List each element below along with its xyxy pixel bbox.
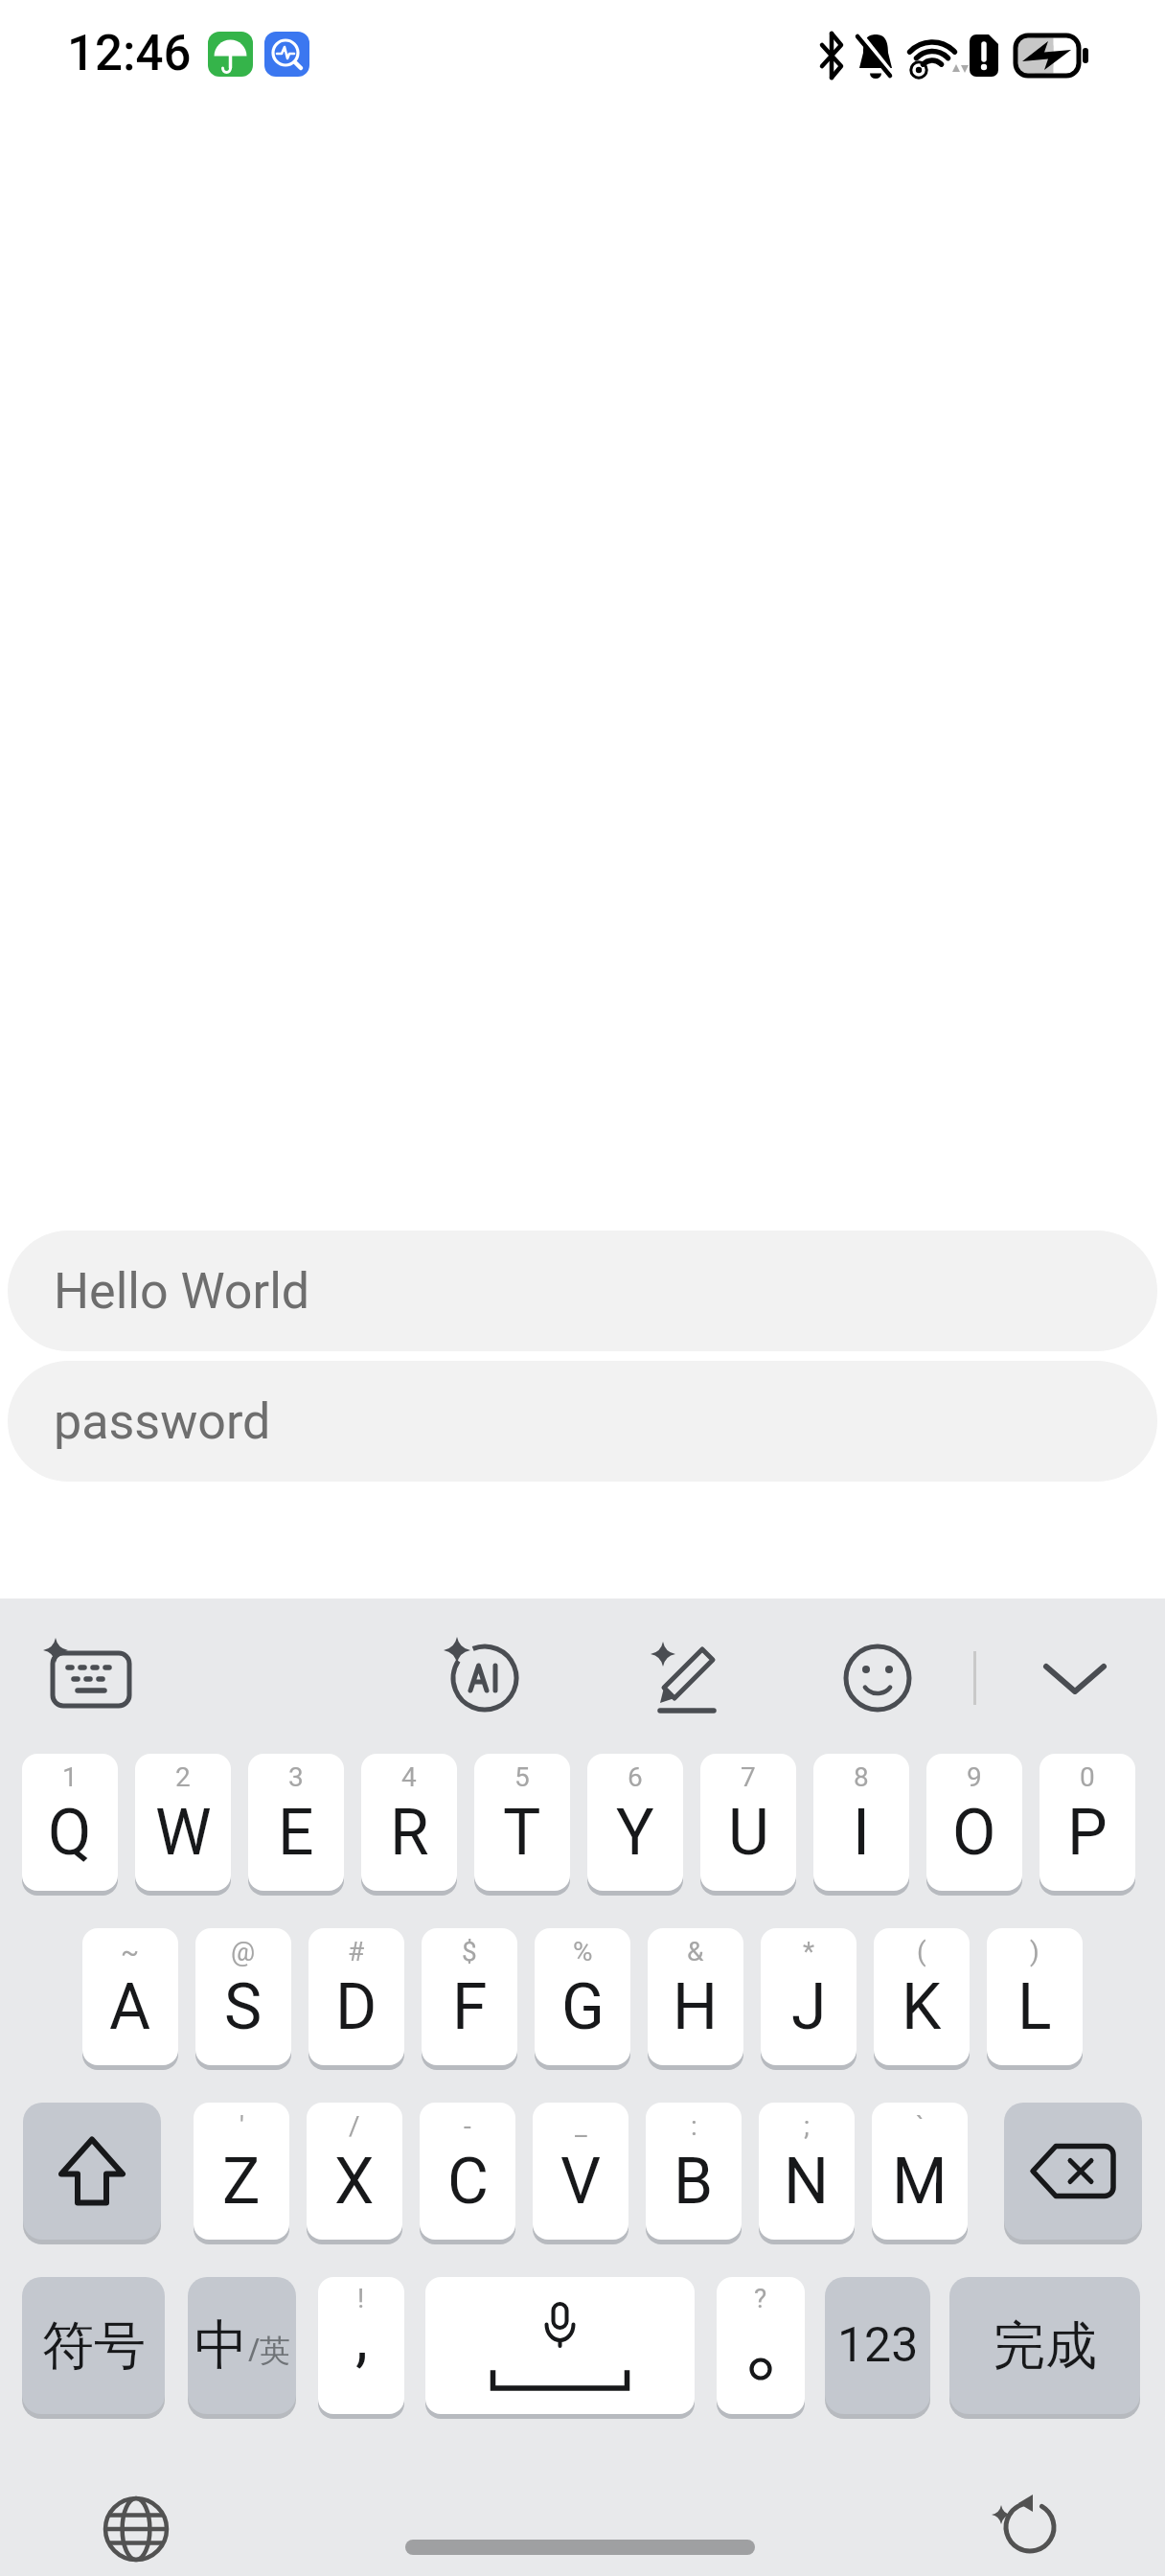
button[interactable]: (	[874, 1928, 970, 2065]
staticText: F	[452, 1970, 488, 2044]
button[interactable]	[425, 2277, 695, 2414]
button[interactable]: 8	[813, 1754, 909, 1891]
staticText: J	[791, 1970, 827, 2044]
staticText: $	[462, 1936, 477, 1967]
staticText: V	[560, 2145, 602, 2219]
staticText: 9	[967, 1761, 982, 1793]
button[interactable]: 2	[135, 1754, 231, 1891]
staticText: Z	[222, 2145, 261, 2219]
button[interactable]	[639, 1632, 731, 1724]
button[interactable]: /	[307, 2103, 402, 2240]
button[interactable]: 6	[587, 1754, 683, 1891]
staticText: ~	[121, 1936, 140, 1967]
button[interactable]	[90, 2483, 182, 2575]
button[interactable]: :	[646, 2103, 742, 2240]
button[interactable]: 9	[926, 1754, 1022, 1891]
staticText: G	[561, 1970, 605, 2044]
button[interactable]: -	[420, 2103, 515, 2240]
staticText: S	[224, 1970, 263, 2044]
button[interactable]: ;	[759, 2103, 855, 2240]
staticText: E	[278, 1796, 314, 1870]
staticText: 12:46	[67, 25, 192, 82]
button[interactable]: Hello World	[8, 1230, 1157, 1351]
button[interactable]: )	[987, 1928, 1083, 2065]
staticText: P	[1067, 1796, 1108, 1870]
button[interactable]: @	[195, 1928, 291, 2065]
button[interactable]: 3	[248, 1754, 344, 1891]
button[interactable]: *	[761, 1928, 857, 2065]
staticText: N	[784, 2145, 830, 2219]
button[interactable]: '	[194, 2103, 289, 2240]
staticText: _	[575, 2110, 587, 2142]
button[interactable]	[832, 1632, 924, 1724]
staticText: /	[349, 2110, 360, 2142]
staticText: &	[687, 1936, 704, 1967]
staticText: 1	[62, 1761, 78, 1793]
staticText: 123	[837, 2317, 919, 2374]
button[interactable]: ?	[717, 2277, 805, 2414]
staticText: I	[853, 1796, 870, 1870]
staticText: 0	[1080, 1761, 1095, 1793]
staticText: Hello World	[54, 1262, 310, 1321]
staticText: A	[109, 1970, 151, 2044]
staticText: `	[916, 2110, 925, 2142]
staticText: R	[390, 1796, 429, 1870]
staticText: 5	[514, 1761, 530, 1793]
button[interactable]: 中	[188, 2277, 296, 2414]
button[interactable]	[45, 1632, 137, 1724]
button[interactable]	[980, 2479, 1072, 2571]
staticText: X	[334, 2145, 375, 2219]
button[interactable]: 4	[361, 1754, 457, 1891]
staticText: 2	[175, 1761, 191, 1793]
button[interactable]: ~	[82, 1928, 178, 2065]
button[interactable]: %	[535, 1928, 630, 2065]
staticText: #	[348, 1936, 365, 1967]
staticText: 中	[194, 2311, 248, 2380]
button[interactable]: 完成	[949, 2277, 1140, 2414]
staticText: H	[673, 1970, 719, 2044]
staticText: ?	[754, 2283, 767, 2314]
button[interactable]: 5	[474, 1754, 570, 1891]
button[interactable]: `	[872, 2103, 968, 2240]
staticText: %	[573, 1936, 593, 1967]
button[interactable]: 123	[825, 2277, 930, 2414]
button[interactable]: &	[648, 1928, 743, 2065]
staticText: )	[1030, 1936, 1039, 1967]
staticText: ;	[804, 2110, 810, 2142]
button[interactable]	[23, 2103, 161, 2240]
staticText: 6	[628, 1761, 643, 1793]
button[interactable]: !	[318, 2277, 404, 2414]
button[interactable]: 7	[700, 1754, 796, 1891]
staticText: C	[447, 2145, 489, 2219]
staticText: L	[1017, 1970, 1052, 2044]
staticText: K	[902, 1970, 942, 2044]
staticText: *	[803, 1936, 815, 1967]
staticText: ,	[355, 2301, 368, 2375]
staticText: password	[54, 1392, 271, 1451]
staticText: Q	[48, 1796, 92, 1870]
staticText: U	[728, 1796, 769, 1870]
staticText: 8	[854, 1761, 869, 1793]
button[interactable]: 1	[22, 1754, 118, 1891]
staticText: 4	[401, 1761, 417, 1793]
button[interactable]: $	[422, 1928, 517, 2065]
button[interactable]	[1004, 2103, 1142, 2240]
staticText: (	[917, 1936, 926, 1967]
button[interactable]: 0	[1039, 1754, 1135, 1891]
button[interactable]: _	[533, 2103, 628, 2240]
button[interactable]: password	[8, 1361, 1157, 1482]
button[interactable]	[1029, 1632, 1121, 1724]
button[interactable]: 符号	[22, 2277, 165, 2414]
staticText: :	[691, 2110, 697, 2142]
staticText: B	[674, 2145, 714, 2219]
button[interactable]	[439, 1632, 531, 1724]
staticText: M	[892, 2145, 948, 2219]
button[interactable]: #	[308, 1928, 404, 2065]
staticText: D	[335, 1970, 377, 2044]
staticText: 7	[741, 1761, 756, 1793]
staticText: -	[464, 2110, 471, 2142]
staticText: T	[503, 1796, 541, 1870]
staticText: O	[952, 1796, 996, 1870]
staticText: W	[155, 1796, 212, 1870]
staticText: Y	[616, 1796, 654, 1870]
